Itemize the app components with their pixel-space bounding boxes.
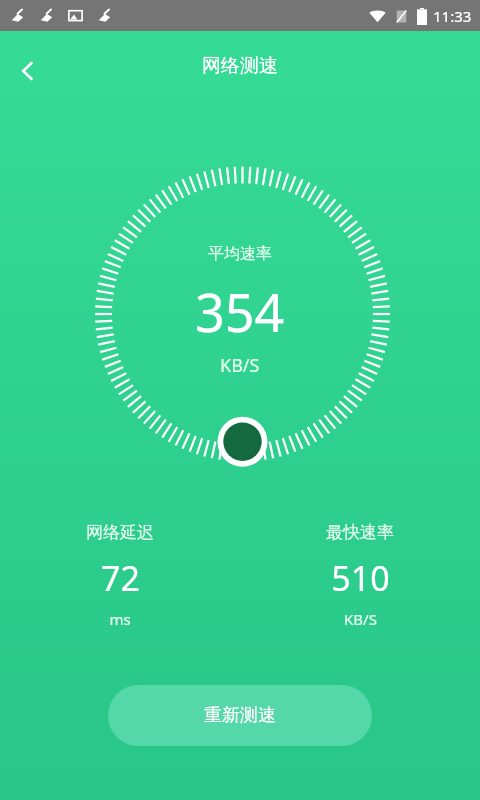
staticText: 11:33	[433, 6, 472, 26]
staticText: 最快速率	[326, 522, 394, 543]
button[interactable]: Back	[4, 47, 52, 95]
staticText: 354	[195, 276, 285, 347]
staticText: 平均速率	[208, 244, 272, 264]
staticText: 网络测速	[202, 54, 278, 78]
staticText: 510	[331, 555, 390, 601]
staticText: 72	[101, 555, 140, 601]
staticText: ms	[109, 609, 131, 629]
staticText: KB/S	[344, 609, 377, 629]
button[interactable]: 最快速率	[240, 522, 480, 629]
button[interactable]: 重新测速	[108, 685, 372, 746]
staticText: 网络延迟	[86, 522, 154, 543]
button[interactable]: 网络延迟	[0, 522, 240, 629]
staticText: 重新测速	[204, 704, 276, 727]
staticText: KB/S	[220, 353, 260, 378]
